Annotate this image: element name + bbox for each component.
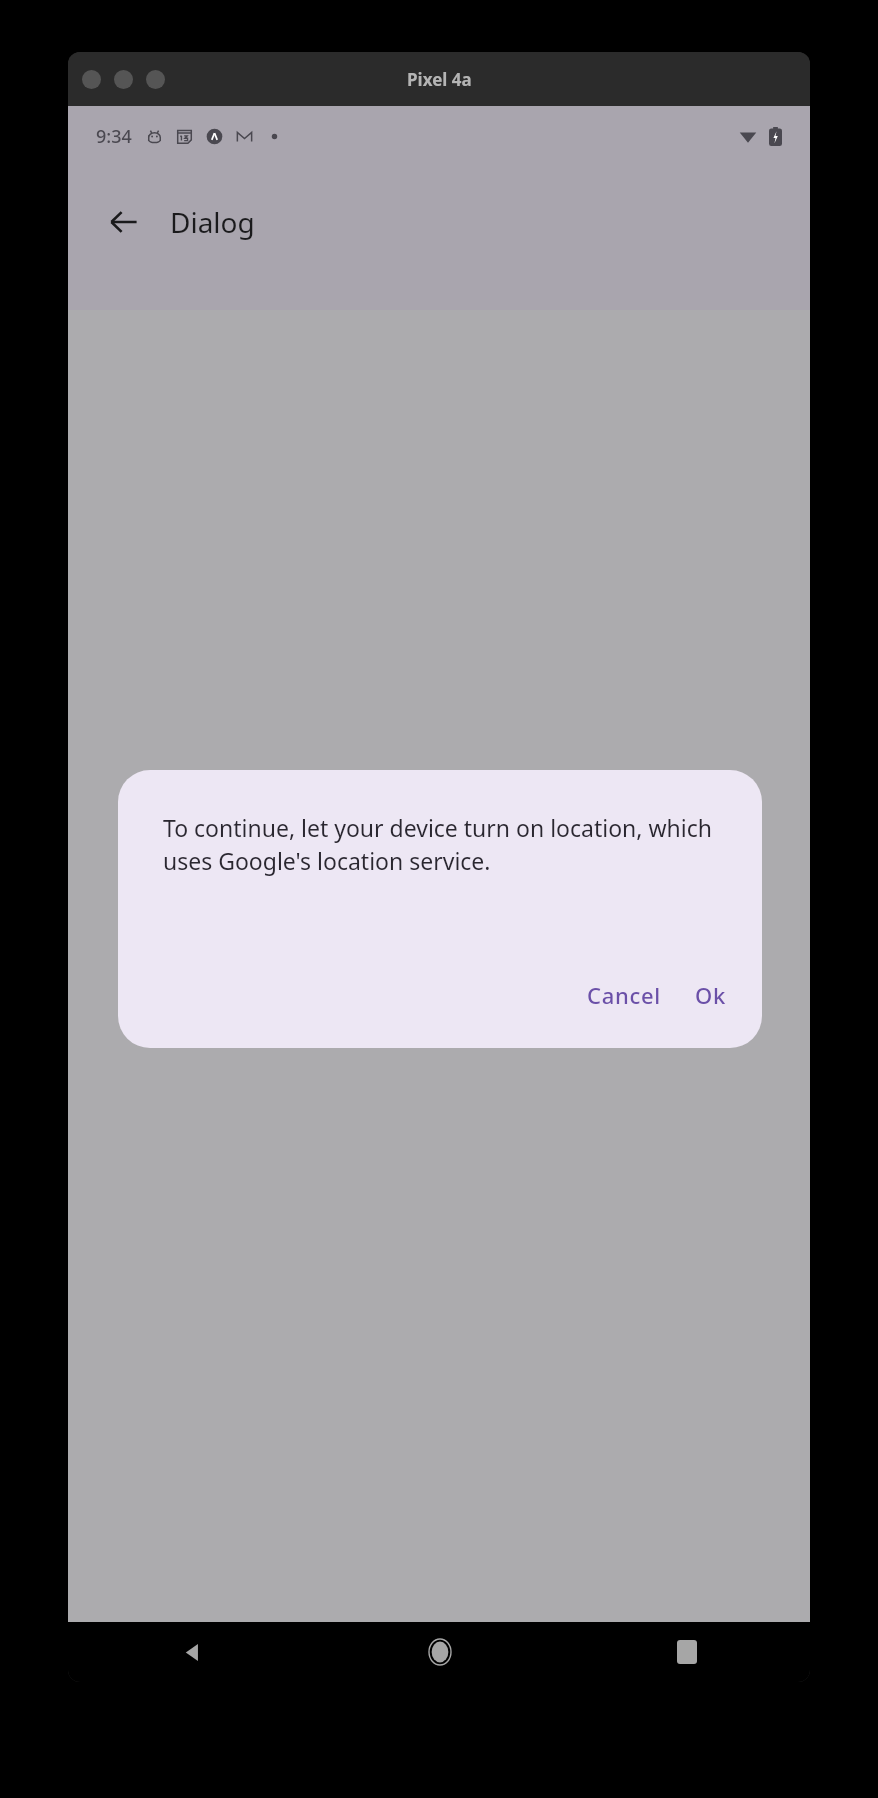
staticText: Cancel	[587, 980, 661, 1010]
staticText: Dialog	[170, 203, 255, 241]
button[interactable]: Cancel	[573, 970, 675, 1020]
staticText: 9:34	[96, 124, 132, 149]
button[interactable]: Back	[68, 1622, 316, 1682]
button[interactable]: Ok	[681, 970, 740, 1020]
button[interactable]: Home	[316, 1622, 563, 1682]
staticText: Ok	[695, 980, 726, 1010]
button[interactable]: Back	[96, 194, 152, 250]
staticText: To continue, let your device turn on loc…	[163, 812, 717, 877]
button[interactable]: Recent apps	[563, 1622, 810, 1682]
staticText: Pixel 4a	[407, 68, 472, 91]
